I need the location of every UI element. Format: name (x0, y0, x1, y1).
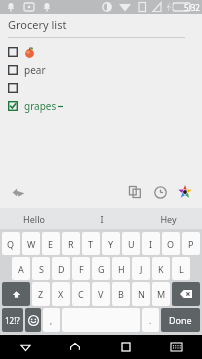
button[interactable]: R (62, 232, 80, 255)
button[interactable]: O (162, 232, 180, 255)
button[interactable]: , (43, 308, 60, 332)
staticText: F (79, 263, 84, 275)
button[interactable]: K (152, 257, 170, 280)
button[interactable]: L (172, 257, 190, 280)
button[interactable]: A (12, 257, 30, 280)
button[interactable]: I (68, 208, 135, 229)
staticText: grapes (24, 99, 57, 113)
button[interactable]: Copy (124, 181, 146, 203)
staticText: T (88, 238, 94, 250)
button[interactable]: Shift (2, 282, 30, 306)
button[interactable]: X (52, 282, 70, 306)
button[interactable]: Undo (8, 182, 28, 202)
staticText: L (179, 263, 184, 275)
button[interactable] (8, 43, 194, 61)
staticText: Y (108, 238, 114, 250)
staticText: U (128, 238, 135, 250)
button[interactable]: F (72, 257, 90, 280)
button[interactable]: V (92, 282, 110, 306)
staticText: N (138, 288, 145, 300)
button[interactable]: W (22, 232, 40, 255)
button[interactable]: D (52, 257, 70, 280)
staticText: V (98, 288, 104, 300)
button[interactable]: Hello (0, 208, 68, 229)
button[interactable]: G (92, 257, 110, 280)
button[interactable]: S (32, 257, 50, 280)
button[interactable]: Q (2, 232, 20, 255)
button[interactable]: Symbols (2, 308, 23, 332)
staticText: A (18, 263, 24, 275)
button[interactable] (8, 79, 194, 97)
staticText: J (140, 263, 143, 275)
staticText: Hello (23, 213, 45, 225)
staticText: B (118, 288, 124, 300)
button[interactable]: P (182, 232, 200, 255)
staticText: Hey (160, 213, 177, 225)
button[interactable]: T (82, 232, 100, 255)
staticText: 5:32 (184, 2, 200, 13)
staticText: X (58, 288, 64, 300)
staticText: C (78, 288, 84, 300)
staticText: 12!? (5, 315, 20, 326)
button[interactable]: N (132, 282, 150, 306)
staticText: K (158, 263, 164, 275)
button[interactable]: grapes (8, 97, 194, 115)
staticText: E (48, 238, 54, 250)
button[interactable]: Emoji (25, 308, 41, 332)
staticText: O (167, 238, 175, 250)
staticText: H (118, 263, 125, 275)
button[interactable]: Recents (100, 335, 151, 359)
button[interactable]: Back (0, 335, 50, 359)
staticText: . (149, 315, 152, 326)
button[interactable]: Backspace (172, 282, 200, 306)
button[interactable]: E (42, 232, 60, 255)
button[interactable]: Y (102, 232, 120, 255)
staticText: W (27, 238, 36, 250)
staticText: Done (169, 314, 192, 326)
button[interactable]: Hey (135, 208, 202, 229)
staticText: I (149, 238, 153, 250)
button[interactable]: H (112, 257, 130, 280)
staticText: R (68, 238, 74, 250)
button[interactable]: M (152, 282, 170, 306)
button[interactable]: pear (8, 61, 194, 79)
button[interactable]: C (72, 282, 90, 306)
staticText: I (100, 213, 104, 225)
button[interactable]: B (112, 282, 130, 306)
staticText: S (39, 263, 44, 275)
button[interactable]: I (142, 232, 160, 255)
staticText: G (98, 263, 105, 275)
staticText: D (58, 263, 65, 275)
staticText: M (157, 288, 166, 300)
button[interactable]: Z (32, 282, 50, 306)
staticText: pear (24, 63, 46, 77)
button[interactable]: . (142, 308, 159, 332)
button[interactable]: U (122, 232, 140, 255)
staticText: Q (7, 238, 15, 250)
button[interactable]: Home (50, 335, 100, 359)
staticText: , (50, 315, 53, 326)
staticText: Z (38, 288, 44, 300)
button[interactable]: Hide keyboard (151, 335, 202, 359)
button[interactable]: Done (161, 308, 200, 332)
button[interactable]: History (149, 181, 171, 203)
button[interactable]: Assistant (174, 181, 196, 203)
staticText: P (188, 238, 194, 250)
button[interactable]: J (132, 257, 150, 280)
staticText: Grocery list (8, 17, 67, 32)
staticText: 100 (168, 4, 177, 11)
